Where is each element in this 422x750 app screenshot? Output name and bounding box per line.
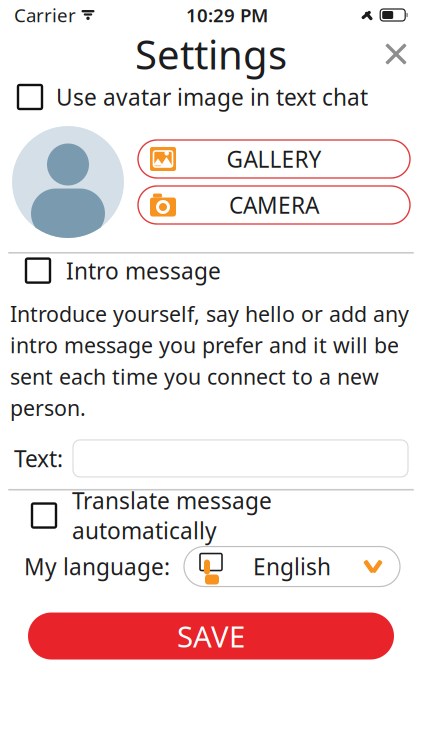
button[interactable]: English xyxy=(184,546,400,586)
staticText: Intro message xyxy=(66,255,221,286)
button[interactable]: GALLERY xyxy=(138,140,410,178)
staticText: English xyxy=(253,551,331,582)
staticText: 10:29 PM xyxy=(186,3,268,27)
staticText: Introduce yourself, say hello or add any… xyxy=(10,300,409,422)
button[interactable]: Intro message xyxy=(0,254,422,288)
staticText: Carrier xyxy=(14,3,76,27)
button[interactable]: Close xyxy=(370,28,422,80)
staticText: Translate message automatically xyxy=(72,485,272,546)
button[interactable]: CAMERA xyxy=(138,186,410,224)
staticText: Text: xyxy=(14,443,63,473)
staticText: GALLERY xyxy=(226,144,321,174)
button[interactable]: Translate message automatically xyxy=(0,498,422,532)
staticText: Settings xyxy=(135,27,287,80)
staticText: My language: xyxy=(24,551,170,582)
staticText: SAVE xyxy=(177,616,245,655)
button[interactable]: Intro message text field xyxy=(73,440,408,477)
staticText: Use avatar image in text chat xyxy=(56,82,368,112)
staticText: CAMERA xyxy=(229,190,319,220)
button[interactable]: Use avatar image in text chat xyxy=(0,80,422,114)
button[interactable]: SAVE xyxy=(28,612,394,659)
